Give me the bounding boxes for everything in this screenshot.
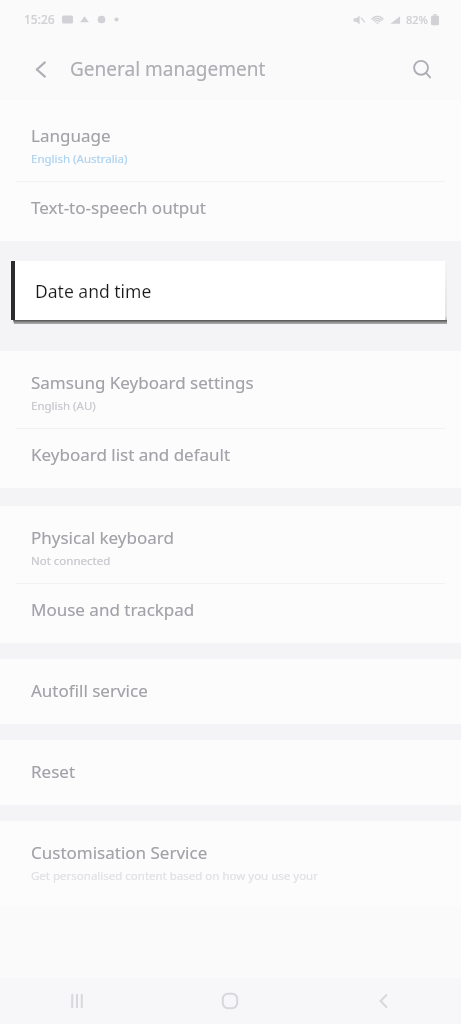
button[interactable]: Search [401, 48, 443, 90]
button[interactable]: Autofill service [0, 665, 461, 716]
button[interactable]: Mouse and trackpad [0, 584, 461, 635]
button[interactable]: Reset [0, 746, 461, 797]
button[interactable]: Keyboard list and default [0, 429, 461, 480]
staticText: Mouse and trackpad [31, 598, 195, 621]
staticText: English (AU) [31, 398, 96, 414]
staticText: 15:26 [24, 11, 55, 27]
button[interactable]: Physical keyboard [0, 512, 461, 583]
staticText: Language [31, 124, 111, 147]
staticText: Physical keyboard [31, 526, 174, 549]
button[interactable]: Home [153, 978, 307, 1024]
staticText: 82% [406, 12, 428, 27]
button[interactable]: Recents [0, 978, 153, 1024]
staticText: Text-to-speech output [31, 196, 206, 219]
staticText: English (Australia) [31, 151, 128, 167]
button[interactable]: Text-to-speech output [0, 182, 461, 233]
staticText: Not connected [31, 553, 111, 569]
button[interactable]: Language [0, 110, 461, 181]
button[interactable]: Customisation Service [0, 827, 461, 898]
staticText: Reset [31, 760, 76, 783]
staticText: General management [70, 56, 266, 82]
staticText: Customisation Service [31, 841, 208, 864]
button[interactable]: Samsung Keyboard settings [0, 357, 461, 428]
staticText: Samsung Keyboard settings [31, 371, 254, 394]
staticText: Autofill service [31, 679, 148, 702]
button[interactable]: Navigate up [20, 48, 62, 90]
staticText: Get personalised content based on how yo… [31, 868, 318, 884]
button[interactable]: Date and time [11, 261, 445, 320]
staticText: Date and time [35, 279, 152, 303]
staticText: Keyboard list and default [31, 443, 231, 466]
